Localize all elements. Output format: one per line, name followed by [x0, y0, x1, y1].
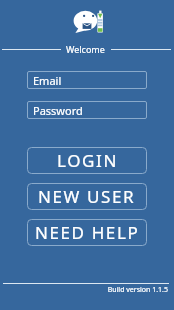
staticText: NEED HELP — [35, 221, 140, 244]
button[interactable]: NEED HELP — [27, 219, 147, 246]
staticText: LOGIN — [57, 149, 118, 172]
button[interactable]: Password — [27, 101, 147, 119]
staticText: Build version 1.1.5 — [0, 285, 168, 295]
button[interactable]: NEW USER — [27, 183, 147, 210]
staticText: Password — [33, 103, 83, 118]
staticText: NEW USER — [38, 185, 136, 208]
staticText: Email — [33, 73, 62, 88]
staticText: Welcome — [66, 43, 105, 55]
button[interactable]: Email — [27, 71, 147, 89]
button[interactable]: LOGIN — [27, 147, 147, 174]
